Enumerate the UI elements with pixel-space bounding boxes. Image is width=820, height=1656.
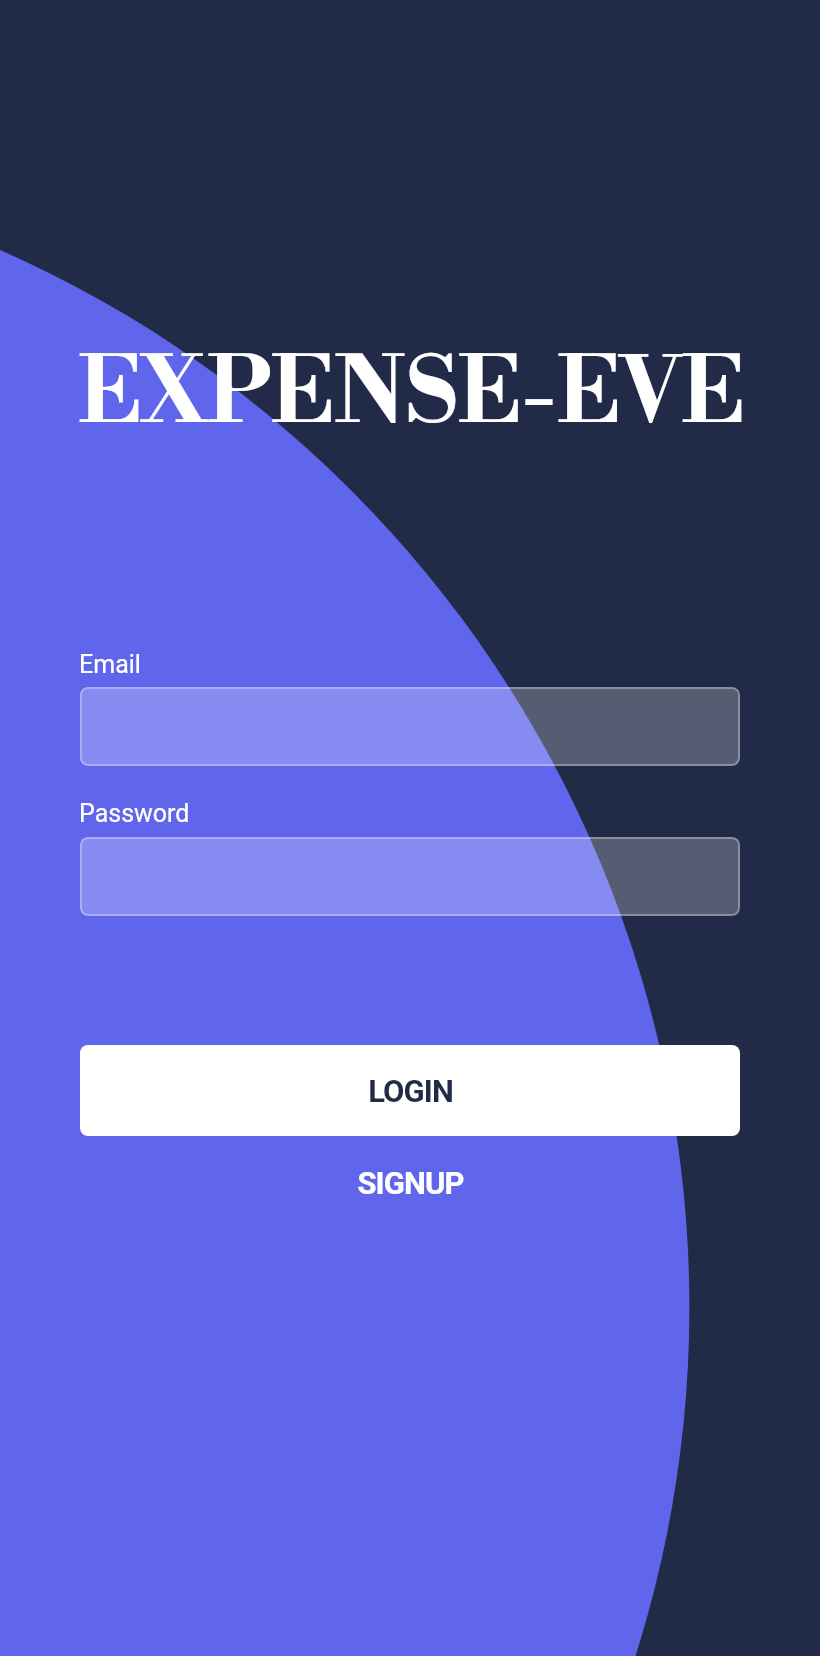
- button[interactable]: Password input field: [80, 837, 740, 916]
- staticText: LOGIN: [368, 1073, 453, 1109]
- staticText: Email: [79, 650, 141, 679]
- button[interactable]: SIGNUP: [80, 1152, 740, 1214]
- staticText: EXPENSE-EVE: [78, 338, 745, 452]
- staticText: Password: [79, 799, 190, 828]
- button[interactable]: Email input field: [80, 687, 740, 766]
- staticText: SIGNUP: [357, 1165, 464, 1201]
- button[interactable]: LOGIN: [80, 1045, 740, 1136]
